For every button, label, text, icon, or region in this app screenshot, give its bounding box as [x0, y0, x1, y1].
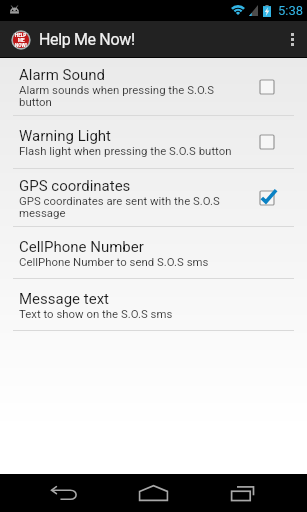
staticText: Text to show on the S.O.S sms	[19, 308, 173, 320]
staticText: Warning Light	[19, 127, 111, 145]
button[interactable]: Toggle setting	[256, 76, 278, 98]
button[interactable]: Recent apps	[224, 474, 267, 512]
staticText: 5:38	[278, 3, 304, 18]
staticText: Alarm sounds when pressing the S.O.S but…	[19, 84, 240, 108]
staticText: CellPhone Number to send S.O.S sms	[19, 256, 209, 268]
button[interactable]: Alarm Sound	[0, 58, 307, 115]
staticText: Alarm Sound	[19, 66, 106, 84]
staticText: ME	[18, 38, 25, 43]
staticText: Message text	[19, 290, 109, 308]
button[interactable]: Toggle setting	[256, 187, 278, 209]
staticText: Help Me Now!	[39, 30, 135, 49]
staticText: Flash light when pressing the S.O.S butt…	[19, 145, 232, 157]
staticText: NOW!	[15, 43, 27, 48]
button[interactable]: CellPhone Number	[0, 227, 307, 278]
button[interactable]: Home	[132, 474, 175, 512]
button[interactable]: Warning Light	[0, 116, 307, 168]
staticText: GPS coordinates	[19, 177, 131, 195]
button[interactable]: Toggle setting	[256, 131, 278, 153]
button[interactable]: More options	[277, 21, 307, 58]
button[interactable]: Back	[43, 474, 86, 512]
staticText: HELP	[15, 33, 27, 38]
button[interactable]: GPS coordinates	[0, 169, 307, 226]
staticText: CellPhone Number	[19, 238, 144, 256]
staticText: GPS coordinates are sent with the S.O.S …	[19, 195, 240, 219]
button[interactable]: Message text	[0, 279, 307, 330]
